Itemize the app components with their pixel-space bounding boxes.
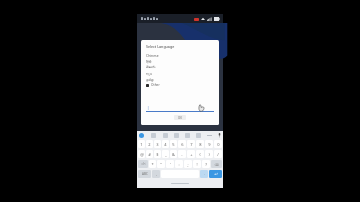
staticText: 2	[148, 142, 151, 147]
staticText: ಕನ್ನಡ	[146, 72, 153, 75]
button[interactable]: 0	[214, 140, 222, 148]
staticText: #	[148, 152, 151, 157]
button[interactable]: |	[146, 103, 214, 112]
button[interactable]: OK	[174, 115, 186, 120]
staticText: Select Language	[146, 44, 175, 49]
button[interactable]: ⌫	[211, 160, 222, 168]
staticText: )	[208, 152, 210, 157]
button[interactable]: Voice input	[218, 133, 221, 138]
staticText: 1	[140, 142, 143, 147]
button[interactable]: "	[157, 160, 165, 168]
staticText: 6	[181, 142, 184, 147]
staticText: हिंदी	[146, 59, 152, 64]
button[interactable]: ?	[202, 160, 210, 168]
button[interactable]: தமிழ்	[146, 76, 214, 82]
button[interactable]: -	[178, 150, 186, 158]
button[interactable]: 9	[205, 140, 213, 148]
staticText: _	[165, 152, 167, 157]
staticText: |	[147, 105, 150, 110]
button[interactable]: '	[166, 160, 174, 168]
staticText: ⌫	[214, 163, 219, 166]
button[interactable]: &	[170, 150, 177, 158]
staticText: Chinese	[146, 53, 159, 58]
button[interactable]: 6	[178, 140, 186, 148]
staticText: 9	[208, 142, 211, 147]
staticText: ?	[205, 162, 207, 167]
staticText: 3	[156, 142, 159, 147]
button[interactable]: (	[196, 150, 204, 158]
staticText: 5	[172, 142, 175, 147]
staticText: ABC	[142, 172, 148, 176]
button[interactable]: /	[214, 150, 222, 158]
staticText: &	[172, 152, 175, 157]
staticText: 0	[217, 142, 220, 147]
button[interactable]: _	[162, 150, 169, 158]
staticText: 8	[199, 142, 202, 147]
button[interactable]: 2	[146, 140, 153, 148]
button[interactable]: Other	[146, 82, 214, 88]
staticText: తెలుగు	[146, 65, 156, 70]
button[interactable]: *	[149, 160, 156, 168]
button[interactable]: ಕನ್ನಡ	[146, 70, 214, 76]
staticText: +	[190, 152, 193, 157]
staticText: 7	[190, 142, 193, 147]
button[interactable]: $	[154, 150, 161, 158]
staticText: /	[217, 152, 219, 157]
staticText: (	[199, 152, 201, 157]
button[interactable]: #	[146, 150, 153, 158]
other: Pointer	[197, 104, 205, 112]
staticText: !	[196, 162, 198, 167]
button[interactable]: 3	[154, 140, 161, 148]
button[interactable]: !	[193, 160, 201, 168]
button[interactable]: ,	[152, 170, 160, 178]
button[interactable]: )	[205, 150, 213, 158]
button[interactable]: Chinese	[146, 52, 214, 58]
staticText: ,	[156, 172, 157, 176]
staticText: Other	[151, 83, 160, 87]
button[interactable]: 1	[138, 140, 145, 148]
button[interactable]: +	[187, 150, 195, 158]
button[interactable]: :	[175, 160, 183, 168]
staticText: "	[160, 162, 162, 167]
staticText: :	[178, 162, 180, 167]
staticText: @	[140, 152, 144, 157]
button[interactable]: .	[200, 170, 208, 178]
button[interactable]: తెలుగు	[146, 64, 214, 70]
button[interactable]: =\<	[138, 160, 148, 168]
staticText: OK	[178, 116, 182, 120]
button[interactable]: ;	[184, 160, 192, 168]
staticText: $	[156, 152, 159, 157]
button[interactable]: 4	[162, 140, 169, 148]
staticText: =\<	[141, 162, 146, 166]
button[interactable]: Google	[139, 133, 144, 138]
button[interactable]: ABC	[138, 170, 151, 178]
button[interactable]: 7	[187, 140, 195, 148]
staticText: *	[151, 162, 154, 167]
staticText: -	[181, 152, 183, 157]
button[interactable]: Enter	[209, 170, 222, 178]
button[interactable]: @	[138, 150, 145, 158]
button[interactable]: हिंदी	[146, 58, 214, 64]
staticText: தமிழ்	[146, 78, 154, 81]
button[interactable]: 5	[170, 140, 177, 148]
staticText: 4	[164, 142, 167, 147]
staticText: '	[170, 162, 171, 167]
staticText: ;	[187, 162, 189, 167]
staticText: .	[204, 172, 205, 176]
button[interactable]: 8	[196, 140, 204, 148]
